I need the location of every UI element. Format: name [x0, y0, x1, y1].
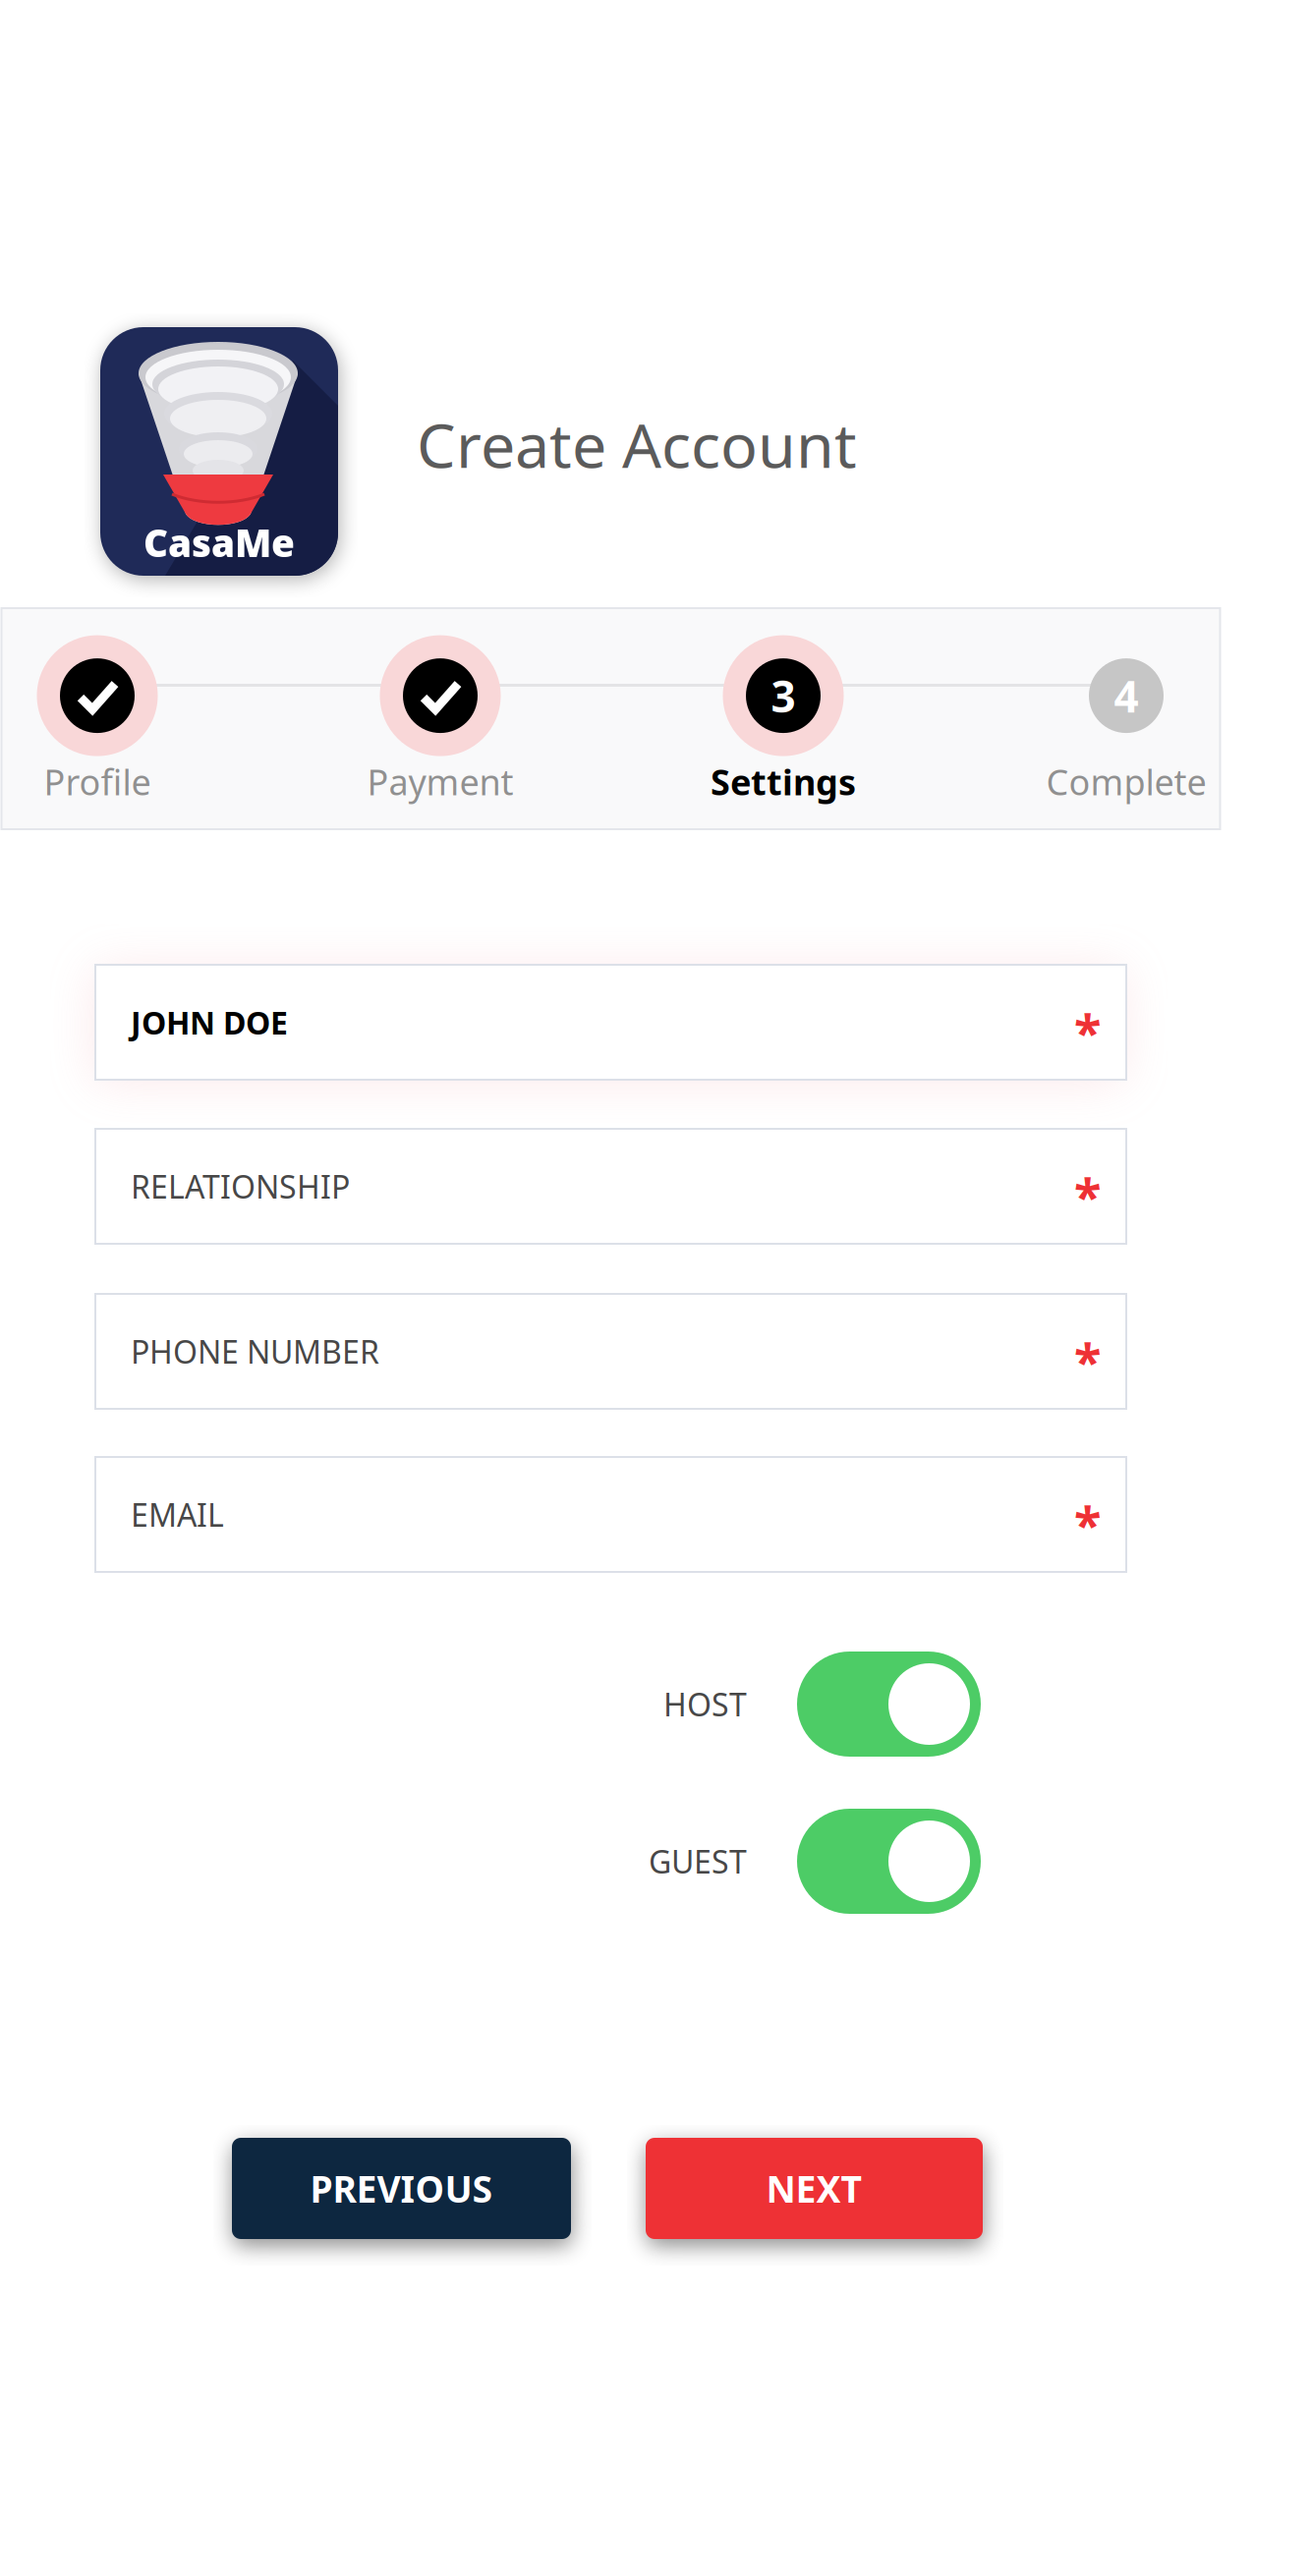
button[interactable]: EMAIL — [95, 1457, 1126, 1572]
staticText: PHONE NUMBER — [131, 1331, 379, 1372]
staticText: Create Account — [417, 403, 857, 485]
staticText: Payment — [367, 758, 513, 805]
staticText: EMAIL — [131, 1494, 224, 1535]
staticText: 4 — [1114, 667, 1139, 724]
staticText: * — [1074, 998, 1101, 1064]
staticText: * — [1074, 1327, 1101, 1393]
staticText: * — [1074, 1490, 1101, 1556]
staticText: CasaMe — [143, 517, 295, 567]
staticText: RELATIONSHIP — [131, 1165, 350, 1207]
staticText: Complete — [1046, 758, 1206, 805]
staticText: NEXT — [766, 2164, 862, 2213]
button[interactable]: Complete step — [959, 624, 1293, 816]
staticText: 3 — [771, 667, 796, 724]
button[interactable]: NEXT — [646, 2138, 983, 2239]
button[interactable]: Payment step, completed — [273, 624, 607, 816]
staticText: HOST — [663, 1683, 747, 1725]
button[interactable]: PREVIOUS — [232, 2138, 571, 2239]
button[interactable]: PHONE NUMBER — [95, 1294, 1126, 1409]
button[interactable]: Settings step, current — [616, 624, 950, 816]
button[interactable]: GUEST — [607, 1809, 981, 1914]
staticText: JOHN DOE — [131, 1001, 288, 1043]
staticText: Profile — [44, 758, 151, 805]
button[interactable]: HOST — [607, 1652, 981, 1757]
staticText: * — [1074, 1162, 1101, 1228]
staticText: Settings — [711, 758, 856, 805]
staticText: GUEST — [649, 1840, 747, 1882]
staticText: PREVIOUS — [310, 2164, 493, 2213]
button[interactable]: RELATIONSHIP — [95, 1129, 1126, 1244]
button[interactable]: Profile step, completed — [0, 624, 264, 816]
button[interactable]: JOHN DOE — [95, 965, 1126, 1080]
